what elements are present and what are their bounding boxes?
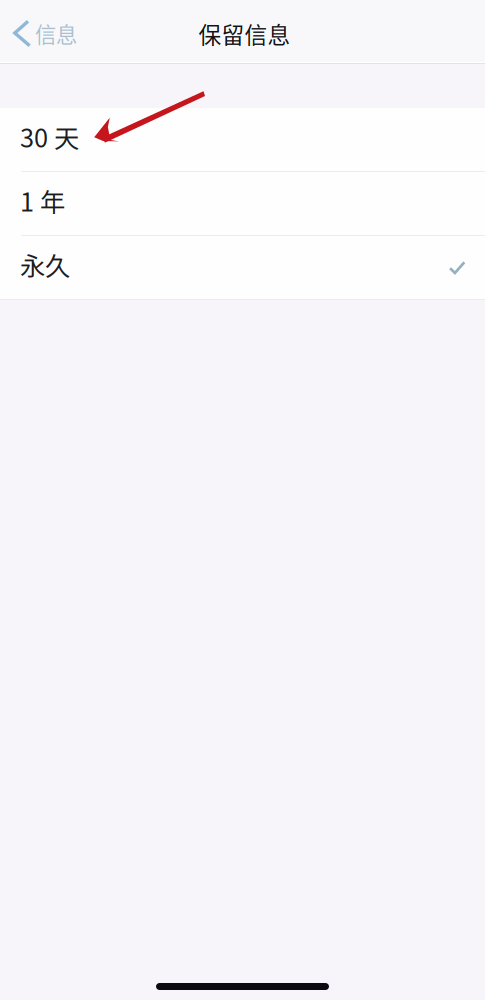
- staticText: 1 年: [20, 182, 65, 219]
- button[interactable]: 30 天: [0, 108, 485, 171]
- button[interactable]: 信息: [0, 0, 89, 62]
- staticText: 永久: [20, 246, 70, 283]
- staticText: 保留信息: [198, 17, 290, 50]
- staticText: 信息: [35, 18, 77, 49]
- button[interactable]: 1 年: [0, 172, 485, 235]
- button[interactable]: 永久: [0, 236, 485, 299]
- staticText: 30 天: [20, 118, 79, 155]
